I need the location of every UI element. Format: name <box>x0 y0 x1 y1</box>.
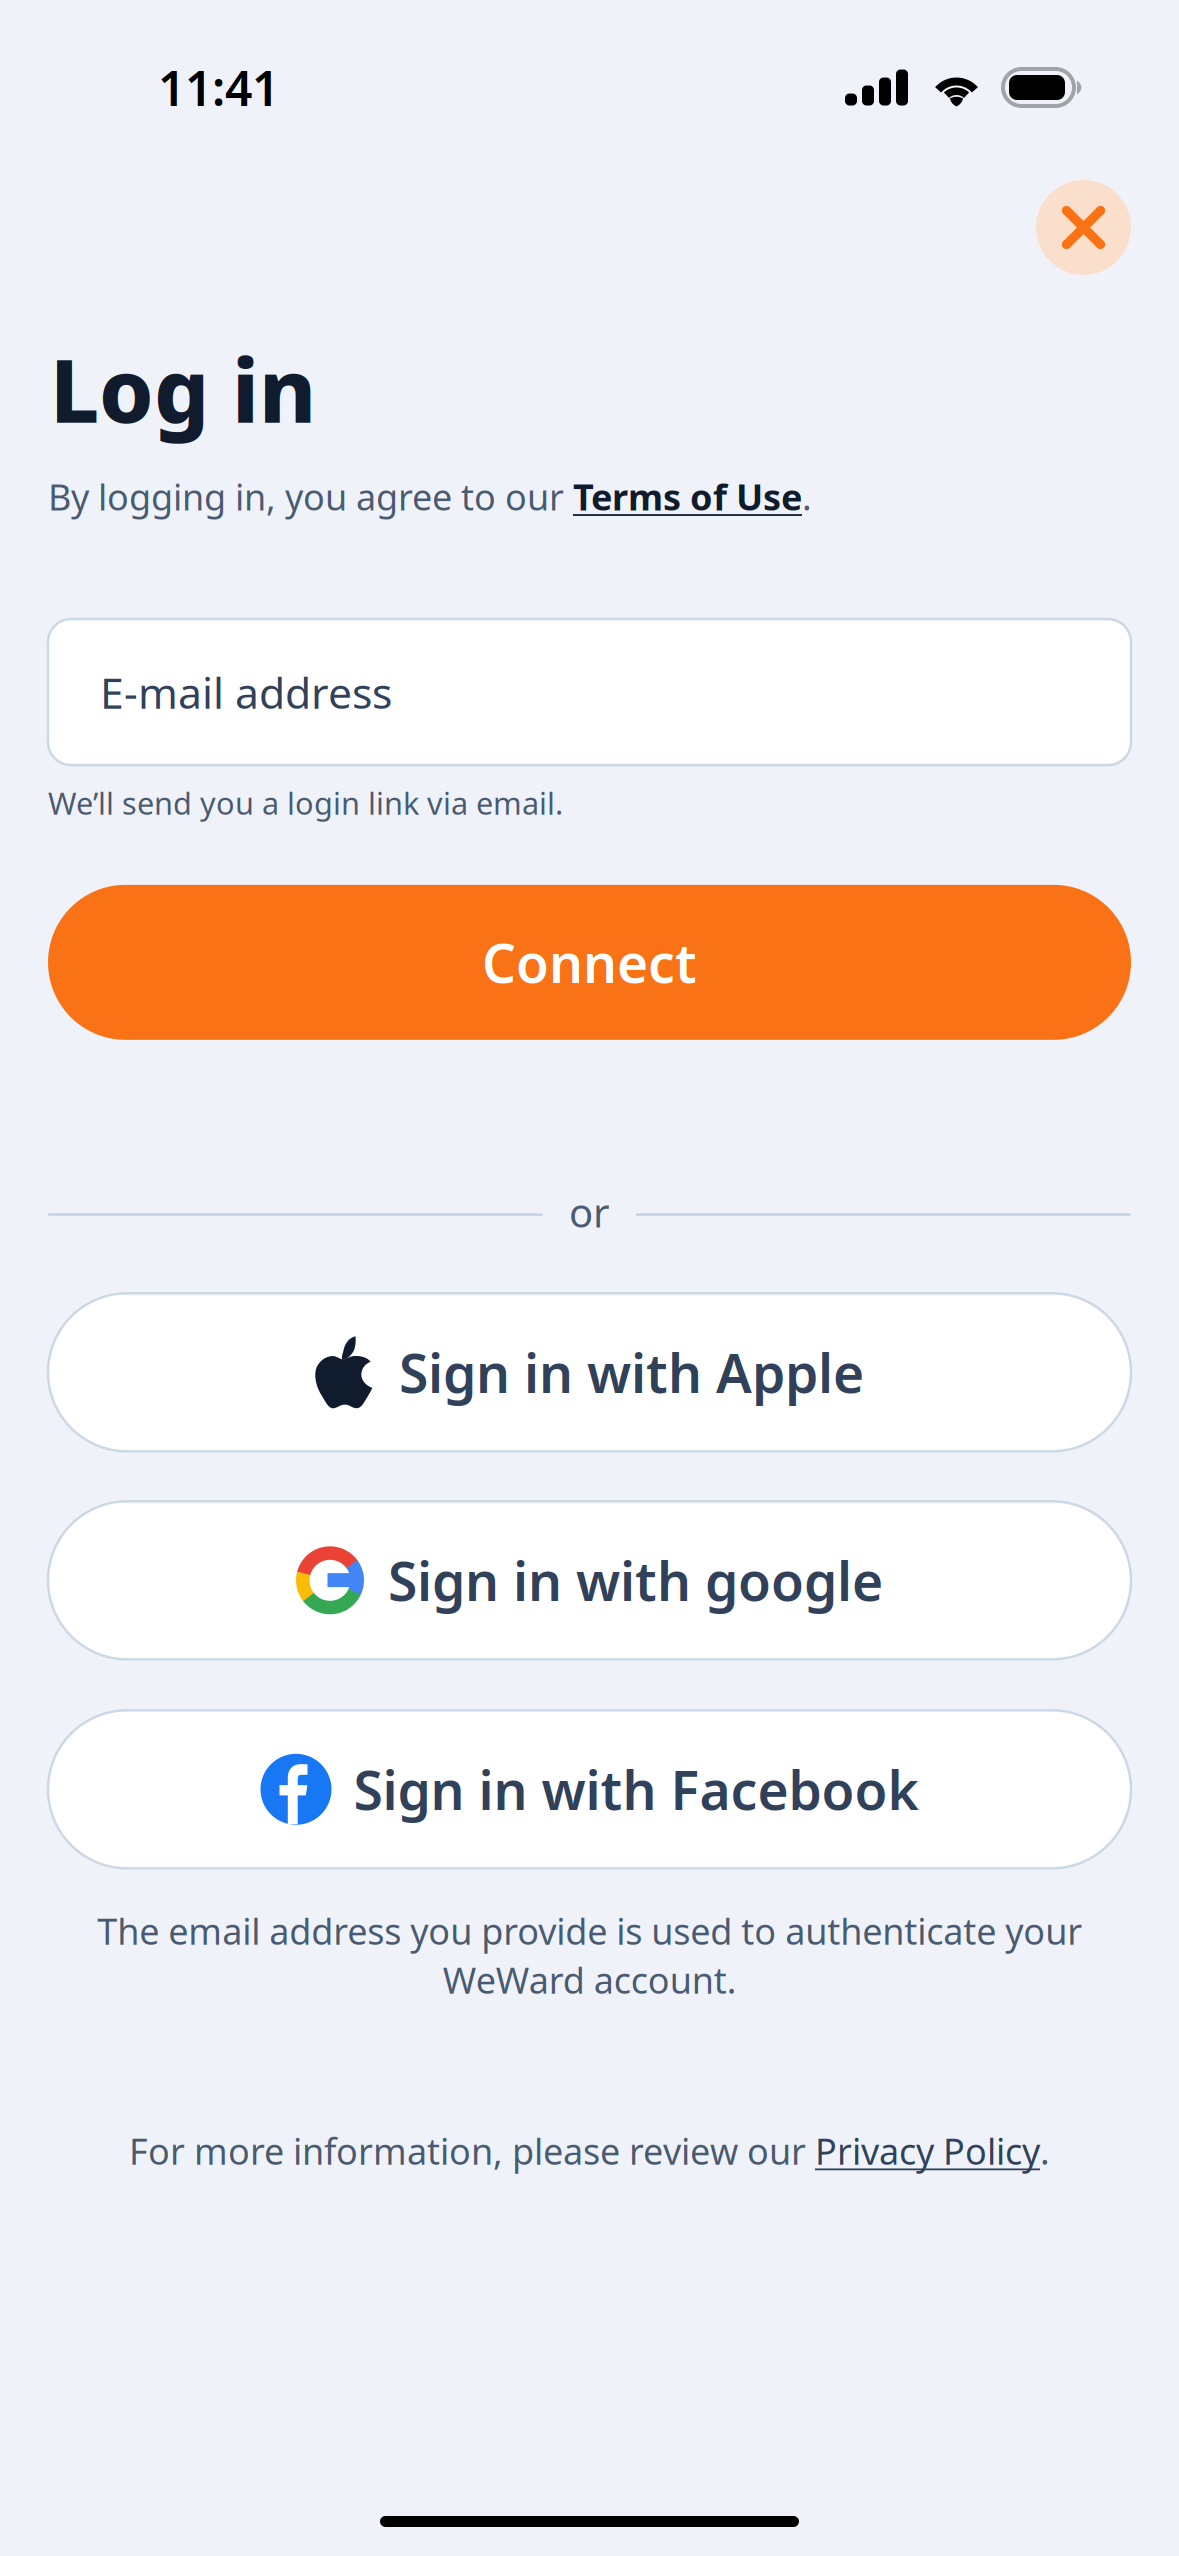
button[interactable]: Terms of Use <box>573 472 802 521</box>
button[interactable]: Close <box>1036 180 1131 275</box>
staticText: The email address you provide is used to… <box>97 1906 1082 2004</box>
staticText: . <box>802 472 812 521</box>
staticText: or <box>569 1185 610 1239</box>
button[interactable]: Sign in with Facebook <box>48 1710 1131 1868</box>
staticText: Privacy Policy <box>815 2126 1040 2175</box>
staticText: Sign in with Facebook <box>353 1753 918 1826</box>
button[interactable]: Connect <box>48 885 1131 1040</box>
staticText: For more information, please review our <box>129 2126 815 2175</box>
button[interactable]: E-mail address <box>48 619 1131 765</box>
staticText: E-mail address <box>100 663 392 721</box>
button[interactable]: Privacy Policy <box>815 2126 1040 2175</box>
staticText: Connect <box>482 926 697 999</box>
button[interactable]: Sign in with Apple <box>48 1293 1131 1451</box>
staticText: 11:41 <box>158 55 279 120</box>
button[interactable]: Sign in with google <box>48 1501 1131 1659</box>
staticText: By logging in, you agree to our <box>48 472 573 521</box>
staticText: Terms of Use <box>573 472 802 521</box>
staticText: Sign in with Apple <box>399 1336 864 1409</box>
staticText: We’ll send you a login link via email. <box>48 782 563 824</box>
staticText: . <box>1040 2126 1050 2175</box>
staticText: Sign in with google <box>388 1544 883 1617</box>
staticText: Log in <box>50 330 316 448</box>
